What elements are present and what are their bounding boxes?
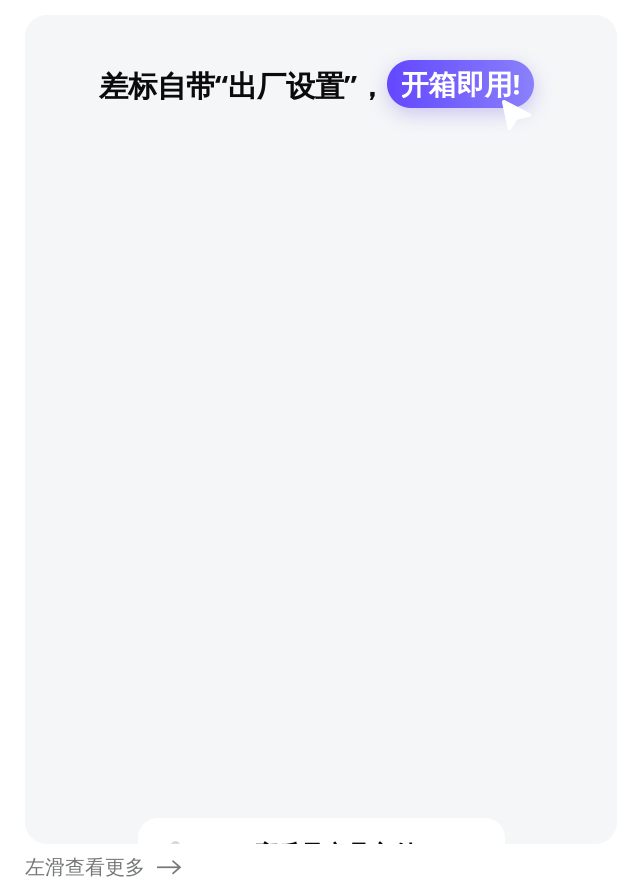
button[interactable]: 开箱即用! [387,60,534,108]
staticText: 高质量产品交付 [255,840,416,868]
staticText: 差标自带“出厂设置”， [99,66,386,105]
staticText: 开箱即用! [400,65,520,103]
button[interactable]: 左滑查看更多 [25,855,182,880]
staticText: 左滑查看更多 [25,855,145,880]
